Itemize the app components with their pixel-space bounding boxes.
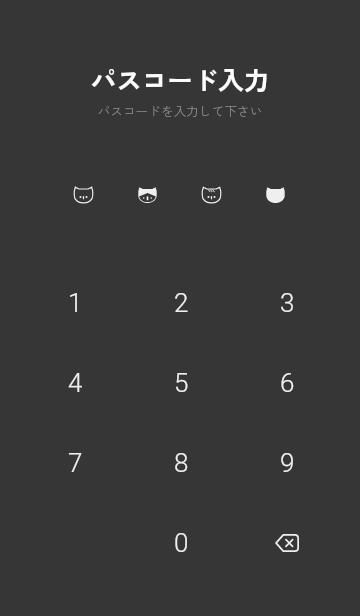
staticText: 8 [174,448,189,478]
button[interactable]: 4 [22,343,128,423]
button[interactable]: 8 [128,423,234,503]
button[interactable]: 2 [128,263,234,343]
staticText: パスコード入力 [0,60,360,97]
other: Backspace [265,521,309,565]
button[interactable]: 5 [128,343,234,423]
staticText: 7 [68,448,83,478]
button[interactable]: 7 [22,423,128,503]
staticText: 5 [174,368,189,398]
button[interactable]: Backspace [234,503,340,583]
staticText: 6 [280,368,295,398]
staticText: 3 [280,288,295,318]
staticText: 9 [280,448,295,478]
staticText: 0 [174,528,189,558]
button[interactable]: 1 [22,263,128,343]
staticText: 4 [68,368,83,398]
button[interactable]: 9 [234,423,340,503]
button[interactable]: 3 [234,263,340,343]
button[interactable]: 0 [128,503,234,583]
staticText: 2 [174,288,189,318]
staticText: パスコードを入力して下さい [0,101,360,119]
staticText: 1 [68,288,83,318]
button[interactable]: 6 [234,343,340,423]
